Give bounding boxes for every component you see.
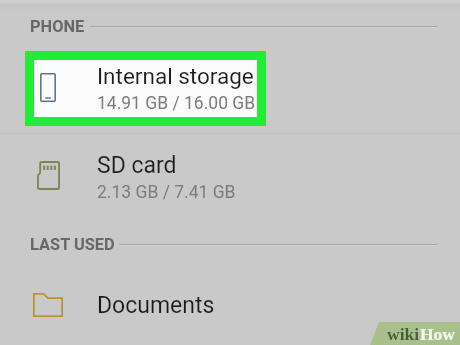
other: SD card xyxy=(37,161,60,190)
staticText: PHONE xyxy=(30,17,85,36)
staticText: Internal storage xyxy=(97,63,254,89)
staticText: 2.13 GB / 7.41 GB xyxy=(97,182,236,203)
staticText: wiki xyxy=(387,324,420,343)
staticText: LAST USED xyxy=(30,235,115,254)
other: Documents folder xyxy=(33,293,63,317)
staticText: SD card xyxy=(97,152,177,179)
staticText: How xyxy=(420,324,455,343)
staticText: Documents xyxy=(97,292,215,319)
staticText: 14.91 GB / 16.00 GB xyxy=(97,93,256,114)
button[interactable]: SD card xyxy=(0,138,460,213)
button[interactable]: Documents folder xyxy=(0,270,460,345)
other: Internal storage xyxy=(40,73,56,102)
button[interactable]: Internal storage xyxy=(0,50,460,125)
